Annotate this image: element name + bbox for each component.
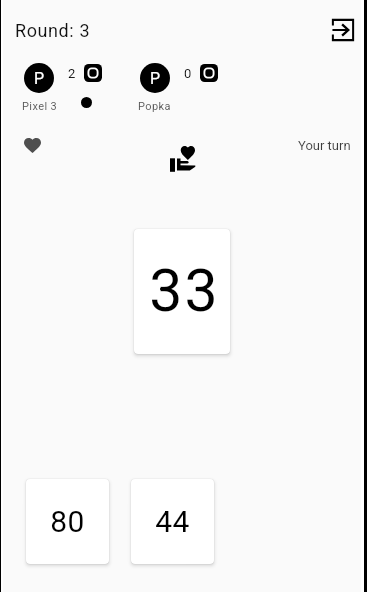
- button[interactable]: Round: 3: [9, 12, 129, 44]
- staticText: Popka: [138, 100, 171, 113]
- button[interactable]: 33: [134, 229, 230, 354]
- staticText: P: [34, 69, 45, 88]
- staticText: Pixel 3: [22, 100, 58, 113]
- button[interactable]: 44: [131, 479, 214, 564]
- button[interactable]: Your turn: [288, 131, 360, 159]
- staticText: 80: [50, 504, 85, 539]
- button[interactable]: P: [8, 52, 124, 124]
- staticText: 33: [149, 256, 220, 325]
- button[interactable]: Lives: [17, 130, 47, 160]
- staticText: 0: [184, 66, 192, 81]
- staticText: P: [150, 69, 161, 88]
- button[interactable]: Give card: [166, 142, 200, 176]
- button[interactable]: P: [124, 52, 240, 124]
- staticText: 2: [68, 66, 76, 81]
- staticText: Your turn: [298, 138, 351, 153]
- button[interactable]: 80: [26, 479, 109, 564]
- button[interactable]: Leave game: [326, 13, 360, 47]
- staticText: Round: 3: [15, 20, 91, 41]
- staticText: 44: [155, 504, 190, 539]
